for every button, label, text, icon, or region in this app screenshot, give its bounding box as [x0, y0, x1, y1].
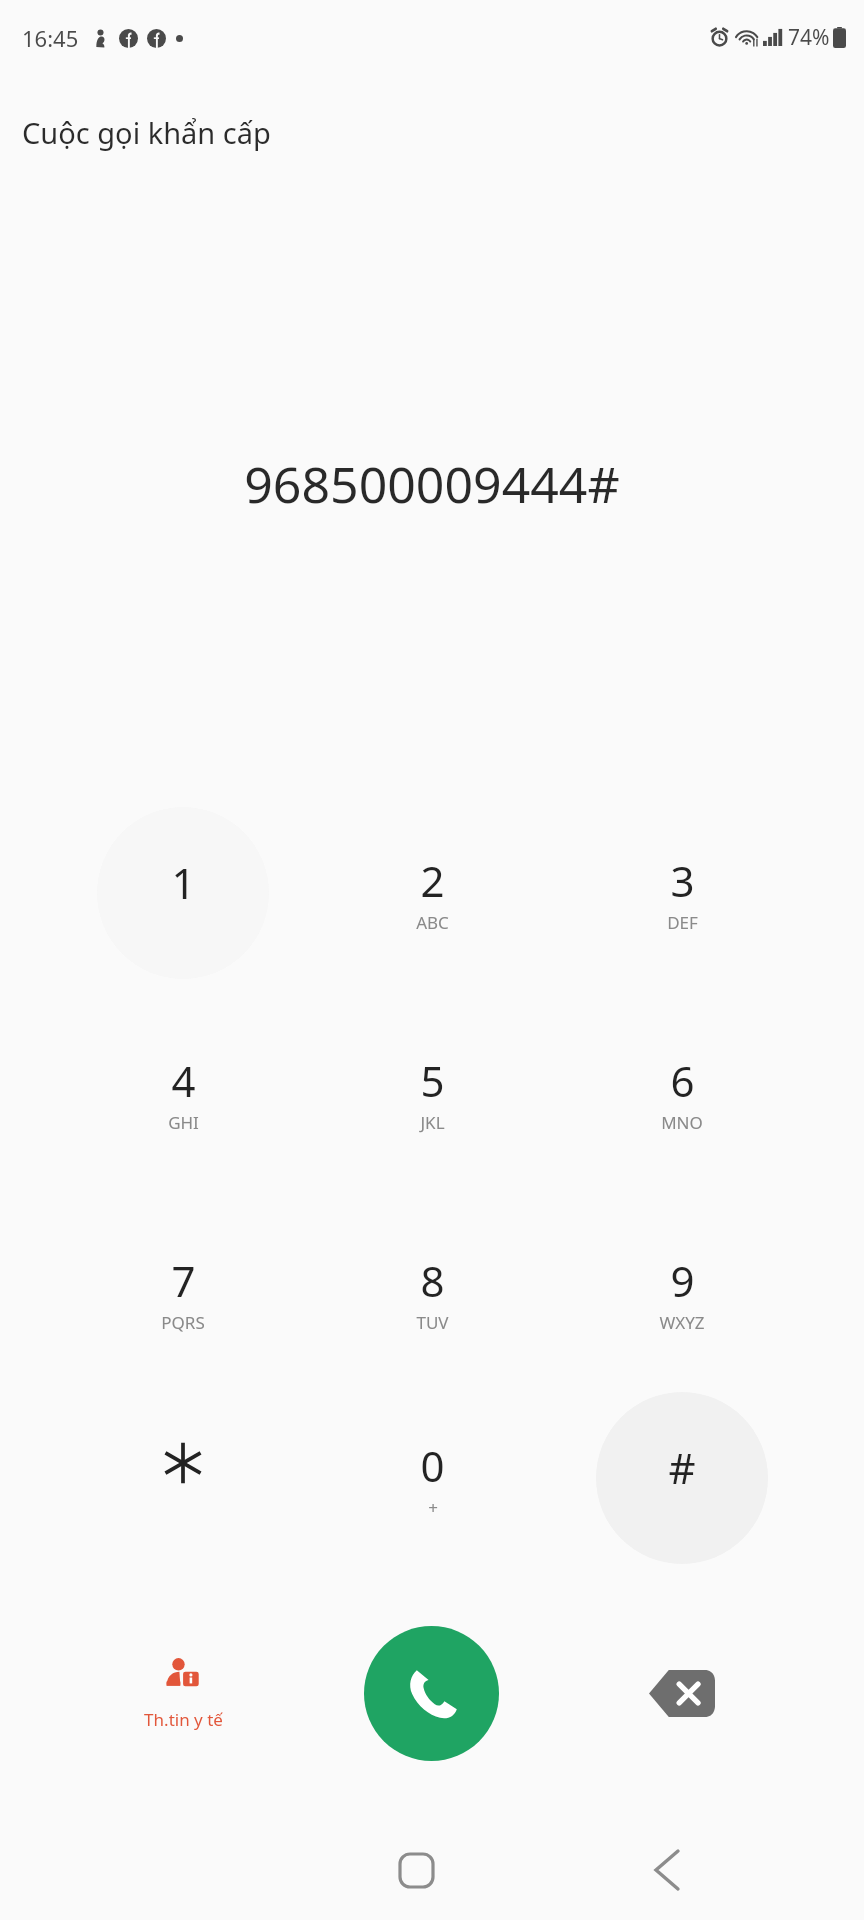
- staticText: ABC: [416, 911, 449, 934]
- staticText: +: [428, 1496, 438, 1519]
- staticText: 3: [670, 852, 695, 909]
- button[interactable]: Th.tin y tế: [103, 1629, 263, 1757]
- staticText: 1: [171, 854, 196, 911]
- staticText: 4: [171, 1052, 196, 1109]
- staticText: JKL: [420, 1111, 445, 1134]
- staticText: TUV: [416, 1311, 449, 1334]
- button[interactable]: Home: [371, 1825, 461, 1915]
- staticText: DEF: [667, 911, 698, 934]
- staticText: 5: [420, 1052, 445, 1109]
- staticText: 16:45: [22, 23, 79, 53]
- button[interactable]: Back: [622, 1825, 712, 1915]
- button[interactable]: 6: [596, 1007, 768, 1179]
- button[interactable]: 8: [346, 1207, 518, 1379]
- staticText: GHI: [168, 1111, 199, 1134]
- button[interactable]: 5: [346, 1007, 518, 1179]
- staticText: 74%: [788, 23, 830, 52]
- staticText: 968500009444#: [244, 450, 620, 518]
- button[interactable]: 3: [596, 807, 768, 979]
- staticText: WXYZ: [659, 1311, 705, 1334]
- staticText: 8: [420, 1252, 445, 1309]
- button[interactable]: 2: [346, 807, 518, 979]
- button[interactable]: Call: [364, 1626, 499, 1761]
- button[interactable]: [97, 1392, 269, 1564]
- button[interactable]: 0: [346, 1392, 518, 1564]
- button[interactable]: 4: [97, 1007, 269, 1179]
- button[interactable]: Backspace: [612, 1633, 752, 1753]
- staticText: PQRS: [161, 1311, 205, 1334]
- staticText: 0: [420, 1437, 445, 1494]
- staticText: MNO: [661, 1111, 703, 1134]
- staticText: #: [668, 1439, 696, 1496]
- button[interactable]: 9: [596, 1207, 768, 1379]
- button[interactable]: #: [596, 1392, 768, 1564]
- staticText: 9: [670, 1252, 695, 1309]
- button[interactable]: 1: [97, 807, 269, 979]
- staticText: 6: [670, 1052, 695, 1109]
- staticText: 2: [420, 852, 445, 909]
- button[interactable]: 7: [97, 1207, 269, 1379]
- staticText: Th.tin y tế: [144, 1708, 223, 1731]
- staticText: Cuộc gọi khẩn cấp: [22, 113, 271, 152]
- staticText: 7: [171, 1252, 196, 1309]
